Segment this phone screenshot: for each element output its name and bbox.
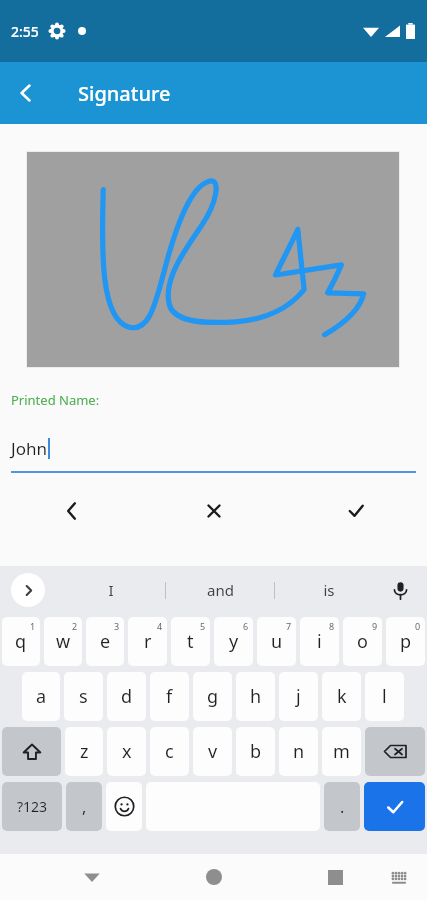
- button[interactable]: Emoji: [106, 782, 142, 831]
- button[interactable]: f: [150, 672, 189, 721]
- button[interactable]: Comma: [66, 782, 102, 831]
- button[interactable]: Change keyboard: [379, 857, 419, 897]
- staticText: 2: [72, 620, 78, 632]
- staticText: ?123: [17, 797, 48, 816]
- staticText: 2:55: [11, 22, 39, 41]
- staticText: s: [79, 684, 88, 709]
- button[interactable]: and: [166, 568, 274, 612]
- staticText: 8: [329, 620, 335, 632]
- button[interactable]: Enter: [364, 782, 425, 831]
- button[interactable]: z: [65, 727, 103, 776]
- button[interactable]: l: [365, 672, 404, 721]
- staticText: Signature: [78, 80, 171, 107]
- staticText: u: [271, 629, 283, 654]
- staticText: g: [207, 684, 219, 709]
- button[interactable]: Accept: [285, 489, 427, 533]
- button[interactable]: Shift: [2, 727, 61, 776]
- button[interactable]: u: [257, 617, 296, 666]
- staticText: y: [229, 629, 239, 654]
- staticText: Printed Name:: [11, 391, 100, 409]
- button[interactable]: Expand suggestions: [11, 573, 45, 607]
- button[interactable]: Clear: [143, 489, 285, 533]
- button[interactable]: w: [44, 617, 82, 666]
- staticText: p: [400, 629, 412, 654]
- staticText: v: [208, 739, 218, 764]
- staticText: c: [165, 739, 174, 764]
- button[interactable]: m: [322, 727, 361, 776]
- staticText: h: [250, 684, 262, 709]
- staticText: t: [187, 629, 194, 654]
- staticText: m: [333, 739, 350, 764]
- button[interactable]: Previous: [0, 489, 143, 533]
- staticText: q: [15, 629, 27, 654]
- button[interactable]: Signature pad: [27, 152, 399, 367]
- button[interactable]: a: [22, 672, 60, 721]
- staticText: j: [296, 684, 301, 709]
- button[interactable]: c: [150, 727, 189, 776]
- button[interactable]: Period: [324, 782, 360, 831]
- button[interactable]: Back: [70, 855, 114, 899]
- staticText: a: [36, 684, 47, 709]
- staticText: and: [207, 580, 234, 600]
- staticText: k: [337, 684, 347, 709]
- button[interactable]: s: [64, 672, 103, 721]
- staticText: 0: [415, 620, 421, 632]
- staticText: e: [100, 629, 111, 654]
- button[interactable]: Backspace: [365, 727, 425, 776]
- staticText: z: [80, 739, 89, 764]
- button[interactable]: Symbols: [2, 782, 62, 831]
- button[interactable]: I: [56, 568, 165, 612]
- staticText: 7: [286, 620, 292, 632]
- button[interactable]: d: [107, 672, 146, 721]
- staticText: r: [144, 629, 152, 654]
- staticText: 9: [372, 620, 378, 632]
- button[interactable]: n: [279, 727, 318, 776]
- staticText: John: [11, 437, 47, 460]
- staticText: x: [122, 739, 132, 764]
- button[interactable]: i: [300, 617, 339, 666]
- button[interactable]: q: [2, 617, 40, 666]
- button[interactable]: j: [279, 672, 318, 721]
- button[interactable]: o: [343, 617, 382, 666]
- staticText: 4: [157, 620, 163, 632]
- button[interactable]: x: [107, 727, 146, 776]
- staticText: d: [121, 684, 133, 709]
- staticText: i: [317, 629, 322, 654]
- staticText: is: [323, 580, 335, 600]
- button[interactable]: e: [86, 617, 124, 666]
- button[interactable]: t: [171, 617, 210, 666]
- staticText: l: [382, 684, 387, 709]
- staticText: I: [108, 580, 114, 600]
- button[interactable]: Recents: [313, 855, 357, 899]
- staticText: w: [56, 629, 71, 654]
- staticText: 5: [200, 620, 206, 632]
- staticText: o: [357, 629, 368, 654]
- button[interactable]: b: [236, 727, 275, 776]
- staticText: b: [250, 739, 262, 764]
- button[interactable]: r: [128, 617, 167, 666]
- button[interactable]: h: [236, 672, 275, 721]
- button[interactable]: is: [275, 568, 383, 612]
- staticText: ,: [82, 796, 87, 818]
- staticText: 6: [243, 620, 249, 632]
- button[interactable]: g: [193, 672, 232, 721]
- button[interactable]: k: [322, 672, 361, 721]
- staticText: n: [293, 739, 305, 764]
- staticText: f: [166, 684, 173, 709]
- button[interactable]: Home: [192, 855, 236, 899]
- staticText: 3: [114, 620, 120, 632]
- button[interactable]: y: [214, 617, 253, 666]
- staticText: 1: [30, 620, 36, 632]
- button[interactable]: p: [386, 617, 425, 666]
- button[interactable]: v: [193, 727, 232, 776]
- staticText: .: [340, 796, 345, 818]
- button[interactable]: Back: [0, 67, 52, 119]
- button[interactable]: Voice input: [381, 571, 419, 609]
- button[interactable]: John: [0, 425, 427, 471]
